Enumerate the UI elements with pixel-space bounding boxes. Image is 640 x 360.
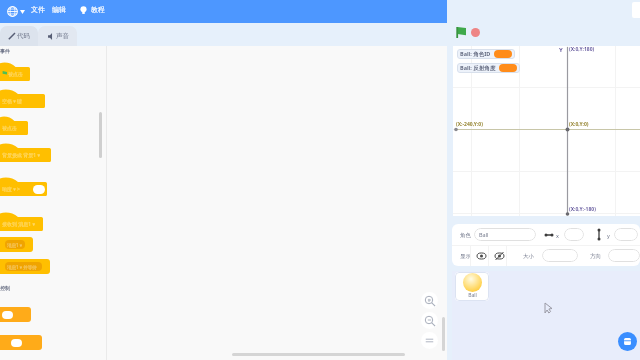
button[interactable]: 接收到 消息1 ▾	[0, 212, 43, 231]
staticText: 被点击	[2, 125, 17, 131]
staticText: Ball: 角色ID	[460, 50, 491, 58]
staticText: 教程	[91, 5, 105, 14]
button[interactable]: Choose a Sprite	[618, 332, 637, 351]
button[interactable]: size	[542, 249, 578, 262]
button[interactable]: Ball	[455, 272, 489, 301]
button[interactable]: 教程	[90, 5, 106, 14]
staticText: 被点击	[8, 71, 23, 77]
staticText: 接收到 消息1 ▾	[2, 221, 35, 228]
button[interactable]: Zoom out	[421, 312, 438, 329]
button[interactable]: x position	[564, 228, 584, 241]
button[interactable]: 被点击	[0, 62, 30, 81]
button[interactable]: 空格 ▾ 键	[0, 89, 45, 108]
staticText: 方向	[590, 253, 601, 260]
button[interactable]: direction	[608, 249, 640, 262]
button[interactable]: Stop	[471, 28, 480, 37]
button[interactable]: 响度 ▾ >	[0, 177, 47, 196]
button[interactable]: Language	[7, 6, 18, 17]
button[interactable]: 消息1 ▾	[0, 237, 33, 252]
staticText: Ball	[479, 231, 489, 238]
button[interactable]: 被点击	[0, 116, 28, 135]
staticText: 消息1 ▾ 并等待	[7, 264, 37, 270]
staticText: (X:0,Y:0)	[569, 121, 589, 128]
button[interactable]: 声音	[38, 26, 77, 46]
staticText: 响度 ▾ >	[2, 186, 20, 193]
staticText: 控制	[0, 285, 10, 291]
staticText: (X:0,Y:-180)	[569, 206, 596, 213]
button[interactable]: 背景换成 背景1 ▾	[0, 143, 51, 162]
staticText: 背景换成 背景1 ▾	[2, 152, 40, 159]
staticText: 编辑	[52, 5, 66, 14]
button[interactable]: Go	[456, 27, 466, 38]
staticText: y	[607, 232, 610, 239]
staticText: 空格 ▾ 键	[2, 98, 23, 105]
staticText: Ball	[468, 292, 477, 299]
staticText: 显示	[460, 253, 471, 260]
button[interactable]	[0, 307, 31, 322]
staticText: 文件	[31, 5, 45, 14]
staticText: 角色	[460, 232, 471, 239]
staticText: Ball: 反射角度	[460, 64, 496, 72]
staticText: 消息1 ▾	[7, 242, 23, 248]
button[interactable]: 消息1 ▾ 并等待	[0, 259, 50, 274]
button[interactable]: Show	[473, 248, 489, 264]
button[interactable]: 文件	[30, 5, 46, 14]
staticText: Y	[559, 46, 563, 54]
staticText: (X:-240,Y:0)	[456, 121, 483, 128]
button[interactable]: y position	[614, 228, 638, 241]
staticText: (X:0,Y:180)	[569, 46, 595, 53]
button[interactable]: Tutorials	[79, 6, 88, 15]
button[interactable]: Hide	[491, 248, 507, 264]
staticText: 事件	[0, 48, 10, 54]
button[interactable]: Reset zoom	[421, 332, 438, 349]
staticText: x	[556, 232, 559, 239]
button[interactable]: 代码	[0, 26, 38, 46]
button[interactable]: Zoom in	[421, 292, 438, 309]
staticText: 声音	[56, 32, 69, 40]
button[interactable]: 编辑	[51, 5, 67, 14]
button[interactable]: Ball	[474, 228, 536, 241]
staticText: 代码	[17, 32, 30, 40]
staticText: 大小	[523, 253, 534, 260]
button[interactable]	[0, 335, 42, 350]
